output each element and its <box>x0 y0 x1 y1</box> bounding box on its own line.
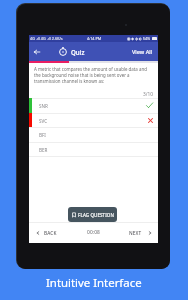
staticText: NEXT <box>129 230 142 236</box>
staticText: 4G .ıll 4G .ıll 2.6K/s <box>30 36 63 41</box>
button[interactable]: NEXT <box>126 225 155 241</box>
staticText: SNR <box>39 103 48 109</box>
button[interactable]: BFI <box>29 127 158 142</box>
staticText: Intuitive Interface <box>46 275 142 291</box>
staticText: 00:08 <box>87 229 101 236</box>
staticText: Quiz <box>71 48 85 56</box>
staticText: BER <box>39 147 48 153</box>
staticText: SVC <box>39 118 48 124</box>
button[interactable]: View All <box>127 44 158 60</box>
staticText: FLAG QUESTION <box>78 212 114 218</box>
staticText: 4:14 PM <box>87 36 102 41</box>
staticText: ◉ ⬥ ⬗ ⬖ 54% <box>127 36 151 41</box>
staticText: 3/10 <box>29 91 153 98</box>
staticText: BFI <box>39 132 46 138</box>
button[interactable]: BER <box>29 142 158 157</box>
staticText: View All <box>132 48 153 56</box>
button[interactable]: Back <box>30 45 44 59</box>
button[interactable]: BACK <box>33 225 60 241</box>
staticText: A metric that compares the amount of usa… <box>34 66 153 84</box>
button[interactable]: SNR <box>29 98 158 113</box>
button[interactable]: FLAG QUESTION <box>68 207 117 222</box>
staticText: BACK <box>44 230 57 236</box>
button[interactable]: SVC <box>29 113 158 128</box>
